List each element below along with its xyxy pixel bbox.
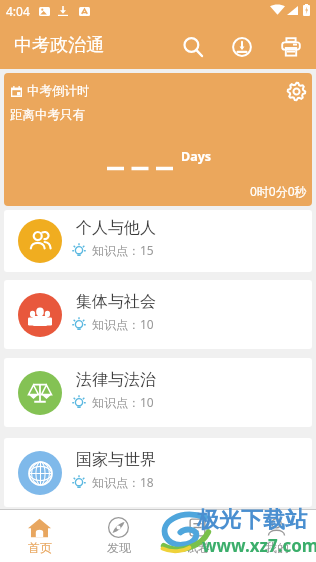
button[interactable]: 发现 [79,510,158,562]
button[interactable]: 我的 [237,510,316,562]
button[interactable]: Print [267,23,315,70]
button[interactable]: 试卷 [158,510,237,562]
button[interactable]: 国家与世界 [4,438,312,507]
staticText: 试卷 [186,540,210,555]
staticText: 国家与世界 [76,450,156,470]
staticText: 发现 [107,540,131,555]
button[interactable]: 法律与法治 [4,358,312,427]
staticText: 距离中考只有 [10,107,85,123]
button[interactable]: Download [218,23,266,70]
staticText: 知识点：18 [92,474,154,490]
staticText: 中考倒计时 [27,83,90,99]
button[interactable]: 集体与社会 [4,280,312,349]
staticText: 中考政治通 [14,34,104,57]
staticText: 知识点：10 [92,394,154,410]
staticText: 我的 [265,540,289,555]
staticText: www.xz7.com [202,534,316,557]
staticText: 集体与社会 [76,292,156,312]
staticText: 4:04 [6,3,30,19]
button[interactable]: Search [169,23,217,70]
staticText: 个人与他人 [76,218,156,238]
button[interactable]: Settings [274,73,312,113]
staticText: 0时0分0秒 [250,183,307,199]
staticText: 极光下载站 [197,506,307,534]
staticText: 知识点：10 [92,316,154,332]
staticText: 法律与法治 [76,370,156,390]
button[interactable]: 首页 [0,510,79,562]
button[interactable]: 中考倒计时 [4,73,312,206]
staticText: Days [181,148,212,165]
button[interactable]: 个人与他人 [4,210,312,272]
staticText: 知识点：15 [92,242,154,258]
staticText: 首页 [28,540,52,555]
